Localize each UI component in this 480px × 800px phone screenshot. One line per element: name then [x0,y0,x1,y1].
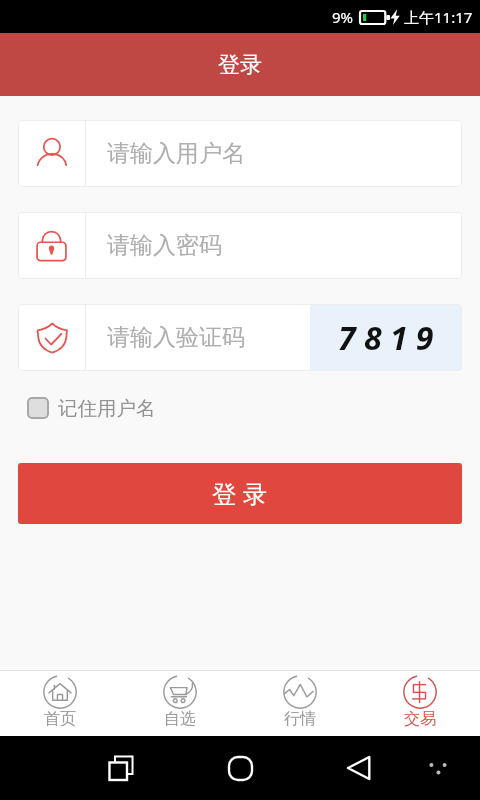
staticText: 登录 [218,51,262,79]
button[interactable]: 交易 [360,671,480,736]
button[interactable]: 记住用户名 [27,396,156,420]
staticText: 9% [332,7,354,27]
button[interactable]: More [415,745,461,791]
staticText: 请输入密码 [107,231,222,260]
staticText: 交易 [404,709,436,729]
staticText: 7 8 1 9 [338,316,434,360]
button[interactable]: 首页 [0,671,120,736]
staticText: 登 录 [212,477,268,510]
staticText: 请输入验证码 [107,323,245,352]
button[interactable]: 登 录 [18,463,462,524]
button[interactable]: Back [336,745,382,791]
button[interactable]: 自选 [120,671,240,736]
staticText: 记住用户名 [58,396,156,420]
button[interactable]: 请输入用户名 [18,120,462,187]
button[interactable]: 请输入验证码 [18,304,462,371]
staticText: 首页 [44,709,76,729]
staticText: 行情 [284,709,316,729]
button[interactable]: 刷新验证码 [310,304,462,371]
button[interactable]: 请输入密码 [18,212,462,279]
button[interactable]: 行情 [240,671,360,736]
button[interactable]: Recents [98,745,144,791]
button[interactable]: Home [217,745,263,791]
staticText: 自选 [164,709,196,729]
staticText: 请输入用户名 [107,139,245,168]
staticText: 上午11:17 [404,7,473,27]
